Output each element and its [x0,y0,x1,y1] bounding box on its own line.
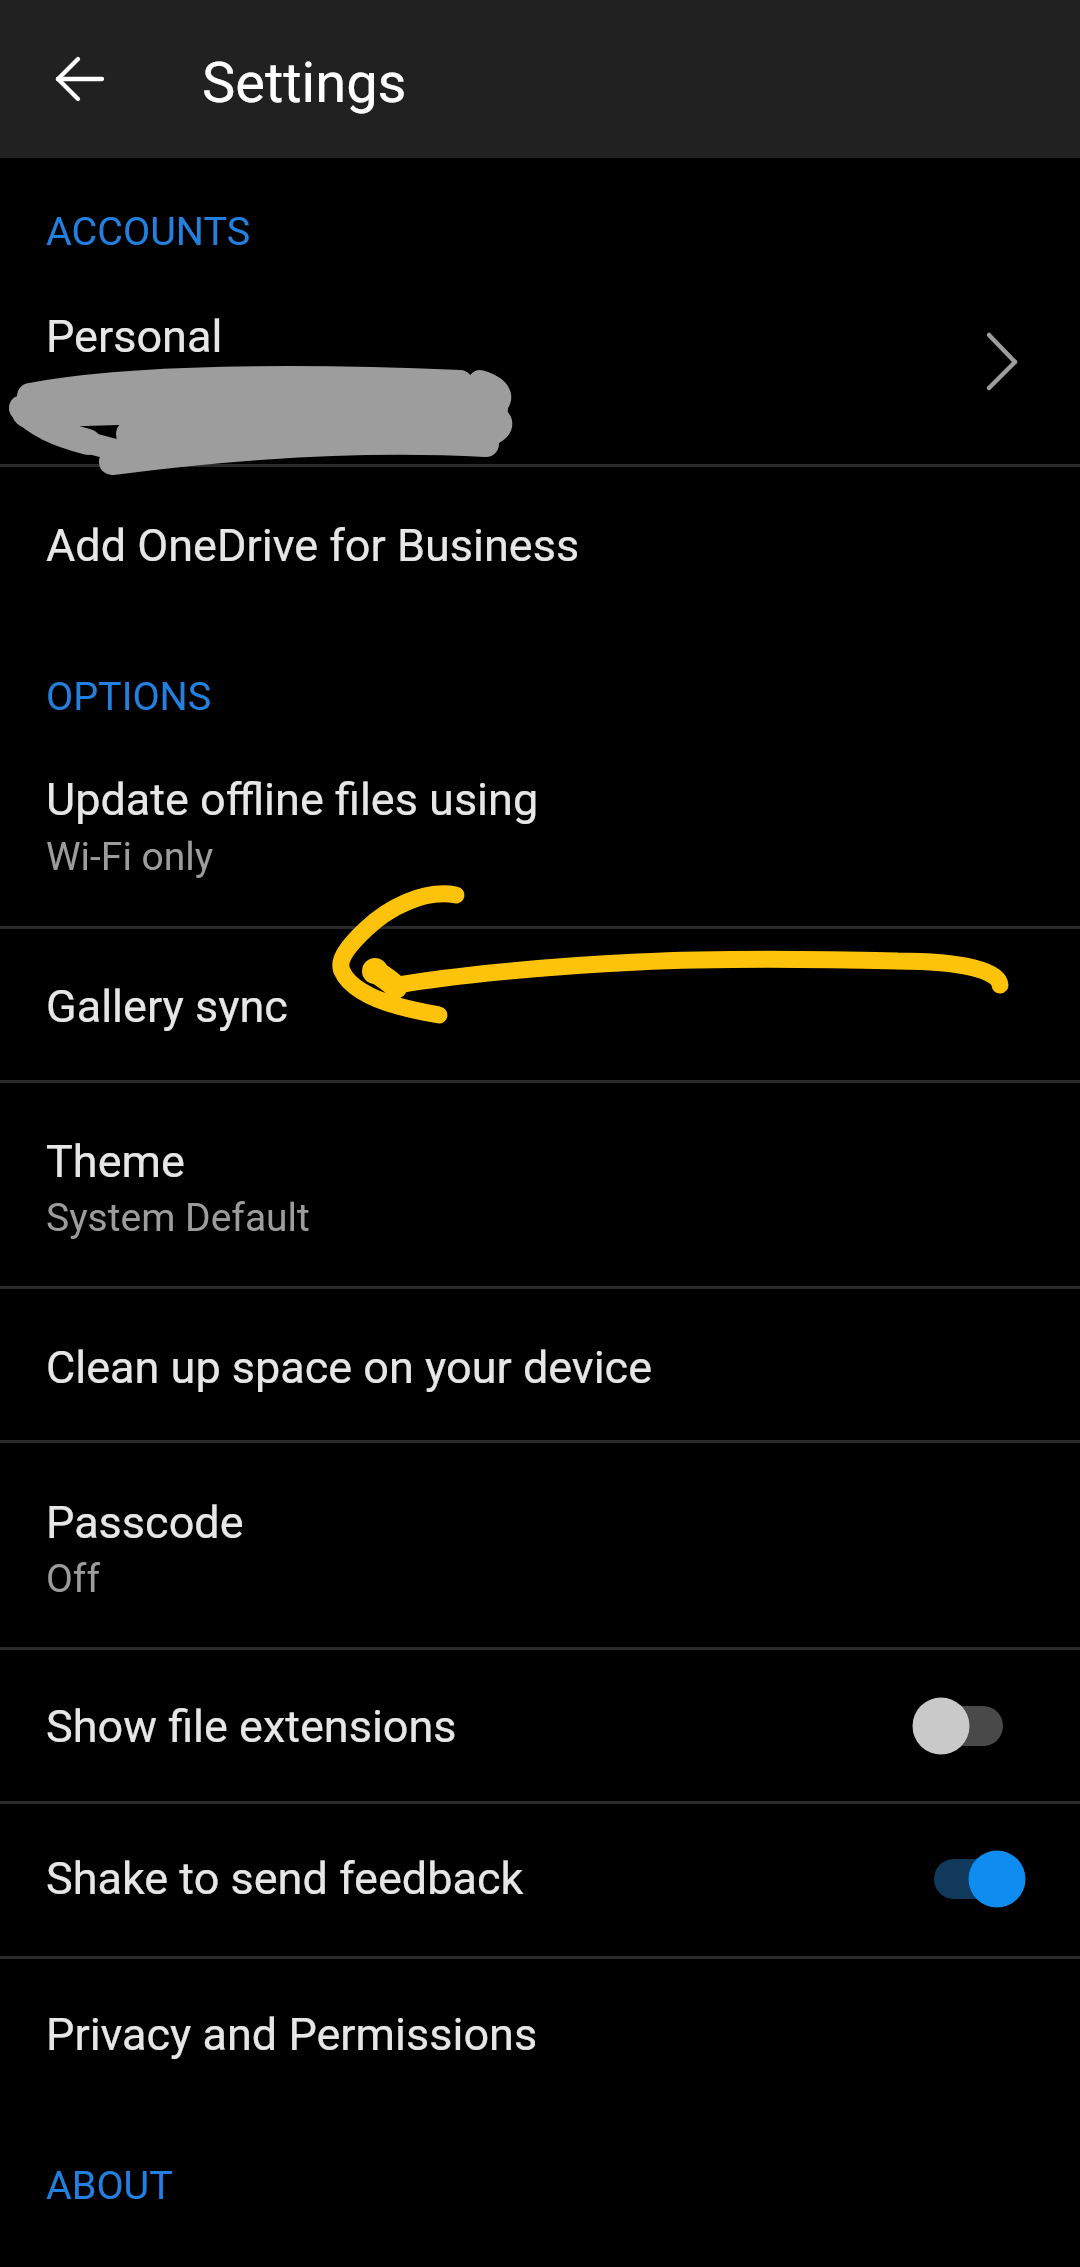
staticText: Personal [46,310,223,363]
staticText: OPTIONS [46,673,212,719]
button[interactable]: Personal [0,272,1080,464]
staticText: Show file extensions [46,1700,457,1753]
button[interactable]: Add OneDrive for Business [0,467,1080,620]
button[interactable]: Gallery sync [0,929,1080,1080]
staticText: ACCOUNTS [46,208,251,254]
staticText: Clean up space on your device [46,1341,653,1394]
staticText: Privacy and Permissions [46,2008,538,2061]
button[interactable]: Show file extensions [0,1650,1080,1801]
staticText: Settings [202,50,407,116]
staticText: ABOUT [46,2162,173,2208]
staticText: Passcode [46,1496,244,1549]
button[interactable]: Passcode [0,1443,1080,1647]
staticText: Off [46,1556,100,1602]
button[interactable]: Update offline files using [0,745,1080,926]
button[interactable]: Back [30,29,130,129]
button[interactable]: Shake to send feedback [914,1829,1064,1929]
staticText: Update offline files using [46,773,539,826]
button[interactable]: Open Personal account [949,323,1049,423]
staticText: Theme [46,1135,185,1188]
button[interactable]: Show file extensions [893,1676,1043,1776]
staticText: Add OneDrive for Business [46,519,580,572]
button[interactable]: Theme [0,1083,1080,1286]
staticText: System Default [46,1195,310,1241]
staticText: Shake to send feedback [46,1852,524,1905]
button[interactable]: Shake to send feedback [0,1804,1080,1956]
button[interactable]: Clean up space on your device [0,1289,1080,1440]
staticText: Wi-Fi only [46,834,214,880]
staticText: Gallery sync [46,980,288,1033]
button[interactable]: Privacy and Permissions [0,1959,1080,2110]
